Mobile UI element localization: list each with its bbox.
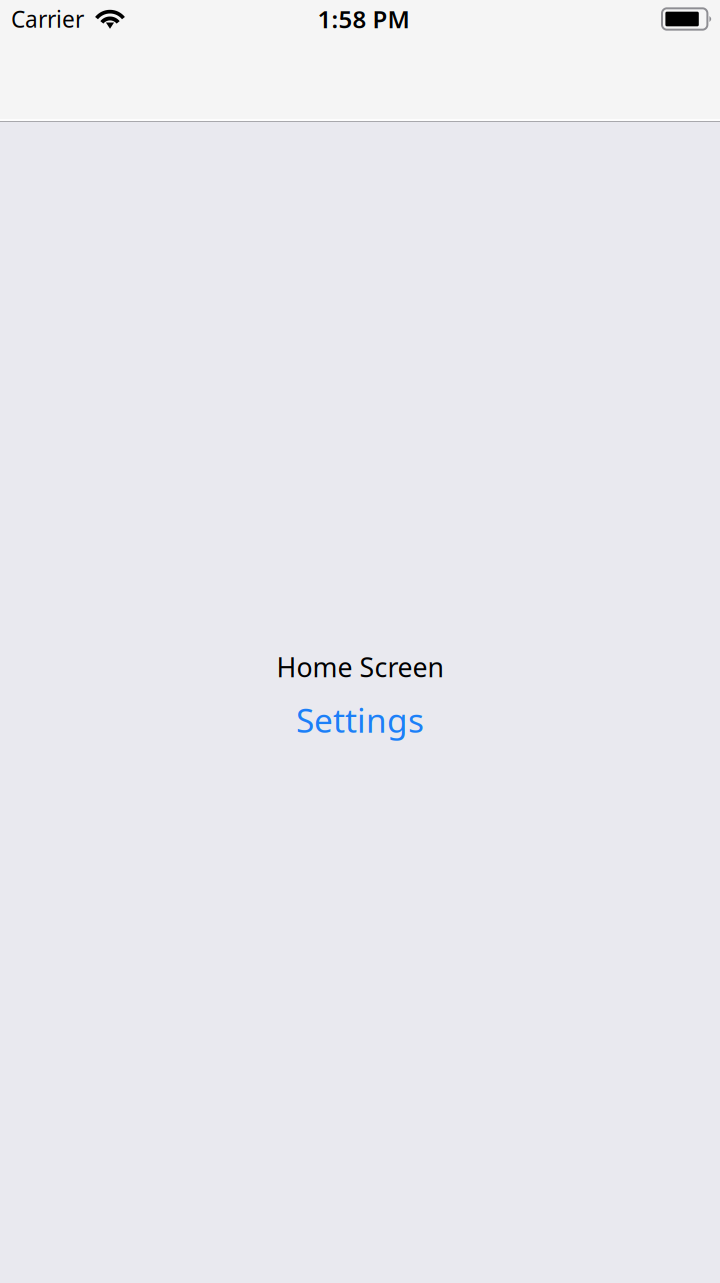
button[interactable]: Settings [280,690,440,750]
staticText: 1:58 PM [317,3,409,35]
staticText: Settings [296,698,424,742]
staticText: Home Screen [276,649,443,685]
staticText: Carrier [11,4,84,34]
